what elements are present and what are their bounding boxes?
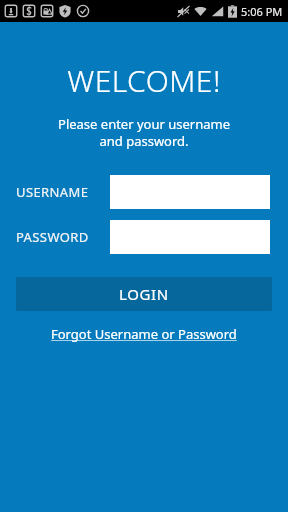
button[interactable]: LOGIN xyxy=(16,277,272,311)
staticText: Please enter your username and password. xyxy=(0,115,288,150)
staticText: PASSWORD xyxy=(16,228,89,246)
staticText: Forgot Username or Password xyxy=(51,325,237,343)
staticText: 5:06 PM xyxy=(241,4,283,19)
staticText: WELCOME! xyxy=(0,60,288,101)
button[interactable]: Forgot Username or Password xyxy=(0,325,288,343)
staticText: USERNAME xyxy=(16,183,89,201)
staticText: LOGIN xyxy=(119,284,169,304)
